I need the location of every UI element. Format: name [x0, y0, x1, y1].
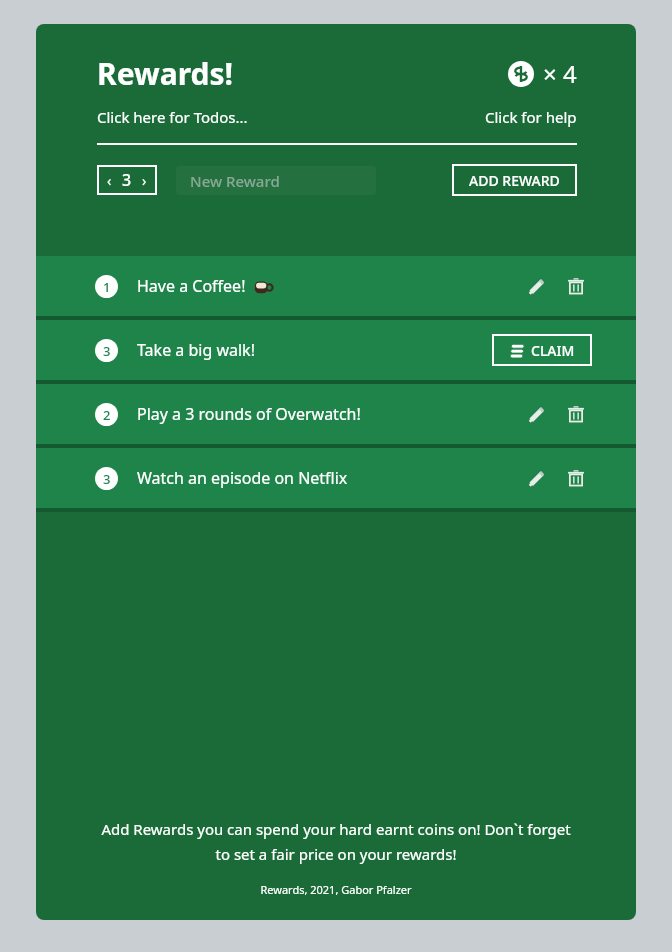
staticText: Rewards!: [97, 53, 233, 94]
staticText: New Reward: [190, 171, 280, 191]
staticText: Click for help: [485, 107, 577, 127]
button[interactable]: Edit reward: [520, 462, 552, 494]
staticText: CLAIM: [531, 341, 575, 360]
button[interactable]: Edit reward: [520, 270, 552, 302]
button[interactable]: Delete reward: [560, 462, 592, 494]
staticText: Click here for Todos...: [97, 107, 248, 127]
button[interactable]: CLAIM: [492, 334, 592, 366]
button[interactable]: Delete reward: [560, 270, 592, 302]
button[interactable]: Click for help: [485, 107, 577, 127]
staticText: 2: [103, 406, 111, 424]
staticText: Watch an episode on Netflix: [137, 467, 348, 489]
button[interactable]: ADD REWARD: [452, 164, 577, 196]
button[interactable]: ‹: [97, 165, 157, 195]
staticText: Rewards, 2021, Gabor Pfalzer: [96, 882, 576, 897]
button[interactable]: 1: [36, 256, 636, 316]
staticText: Play a 3 rounds of Overwatch!: [137, 403, 361, 425]
staticText: 1: [103, 278, 111, 296]
staticText: 3: [122, 169, 132, 191]
staticText: × 4: [543, 57, 577, 90]
button[interactable]: Delete reward: [560, 398, 592, 430]
staticText: ‹: [107, 171, 112, 190]
button[interactable]: 3: [36, 320, 636, 380]
staticText: Add Rewards you can spend your hard earn…: [96, 819, 576, 864]
button[interactable]: 3: [36, 448, 636, 508]
staticText: Have a Coffee!: [137, 275, 246, 297]
button[interactable]: Click here for Todos...: [97, 107, 248, 127]
button[interactable]: Edit reward: [520, 398, 552, 430]
button[interactable]: New Reward: [176, 166, 376, 195]
staticText: 3: [103, 342, 111, 360]
button[interactable]: 2: [36, 384, 636, 444]
staticText: 3: [103, 470, 111, 488]
staticText: Take a big walk!: [137, 339, 255, 361]
staticText: ›: [142, 171, 147, 190]
staticText: ADD REWARD: [469, 171, 560, 190]
